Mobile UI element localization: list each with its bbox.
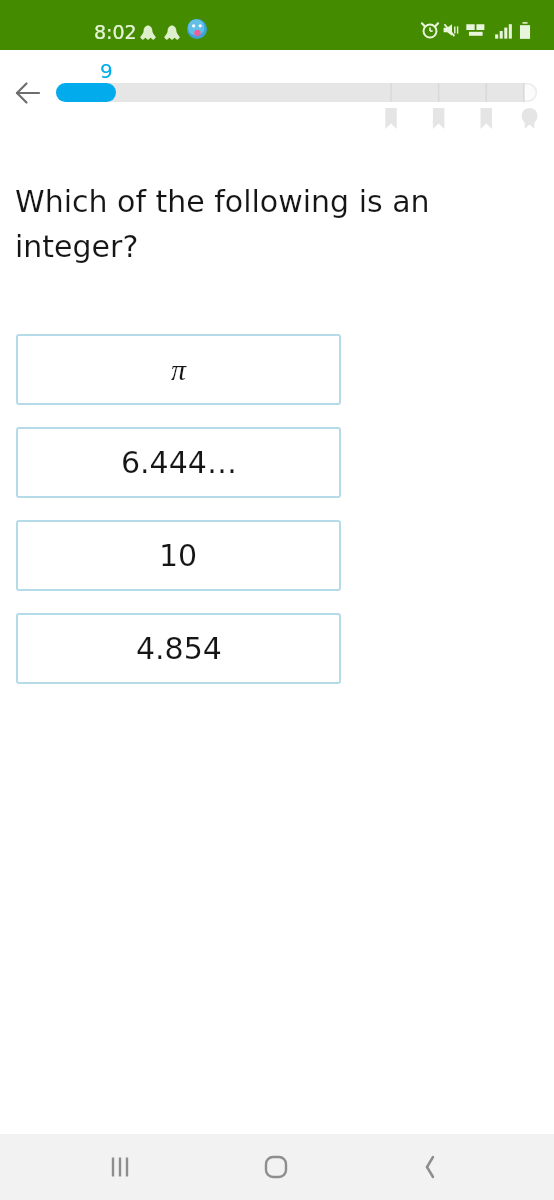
button[interactable]: Back [6, 71, 50, 115]
staticText: 4.854 [136, 631, 222, 666]
button[interactable]: 4.854 [16, 613, 341, 684]
button[interactable]: 10 [16, 520, 341, 591]
staticText: 8:02 [94, 21, 137, 43]
staticText: 9 [100, 59, 113, 82]
staticText: 6.444… [121, 445, 237, 480]
button[interactable]: 6.444… [16, 427, 341, 498]
staticText: π [171, 353, 187, 386]
button[interactable]: Back [406, 1143, 454, 1191]
button[interactable]: π [16, 334, 341, 405]
staticText: 10 [159, 538, 198, 573]
staticText: Which of the following is an integer? [15, 184, 430, 264]
button[interactable]: Home [252, 1143, 300, 1191]
button[interactable]: Recents [96, 1143, 144, 1191]
